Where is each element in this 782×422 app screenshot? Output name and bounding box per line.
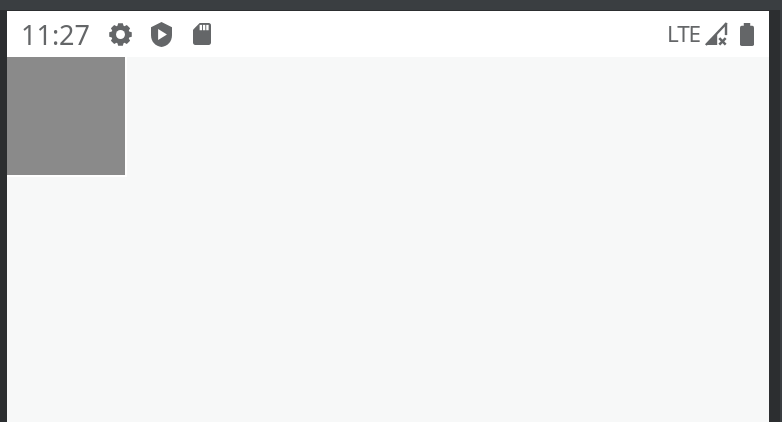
button[interactable]: Settings xyxy=(109,23,132,46)
button[interactable]: SD card xyxy=(193,23,211,45)
button[interactable]: Image xyxy=(7,57,127,177)
other: No mobile signal xyxy=(705,23,727,45)
button[interactable]: Play Protect xyxy=(151,22,172,47)
staticText: LTE xyxy=(667,18,700,49)
other: Battery full xyxy=(740,23,754,46)
staticText: 11:27 xyxy=(21,16,91,53)
